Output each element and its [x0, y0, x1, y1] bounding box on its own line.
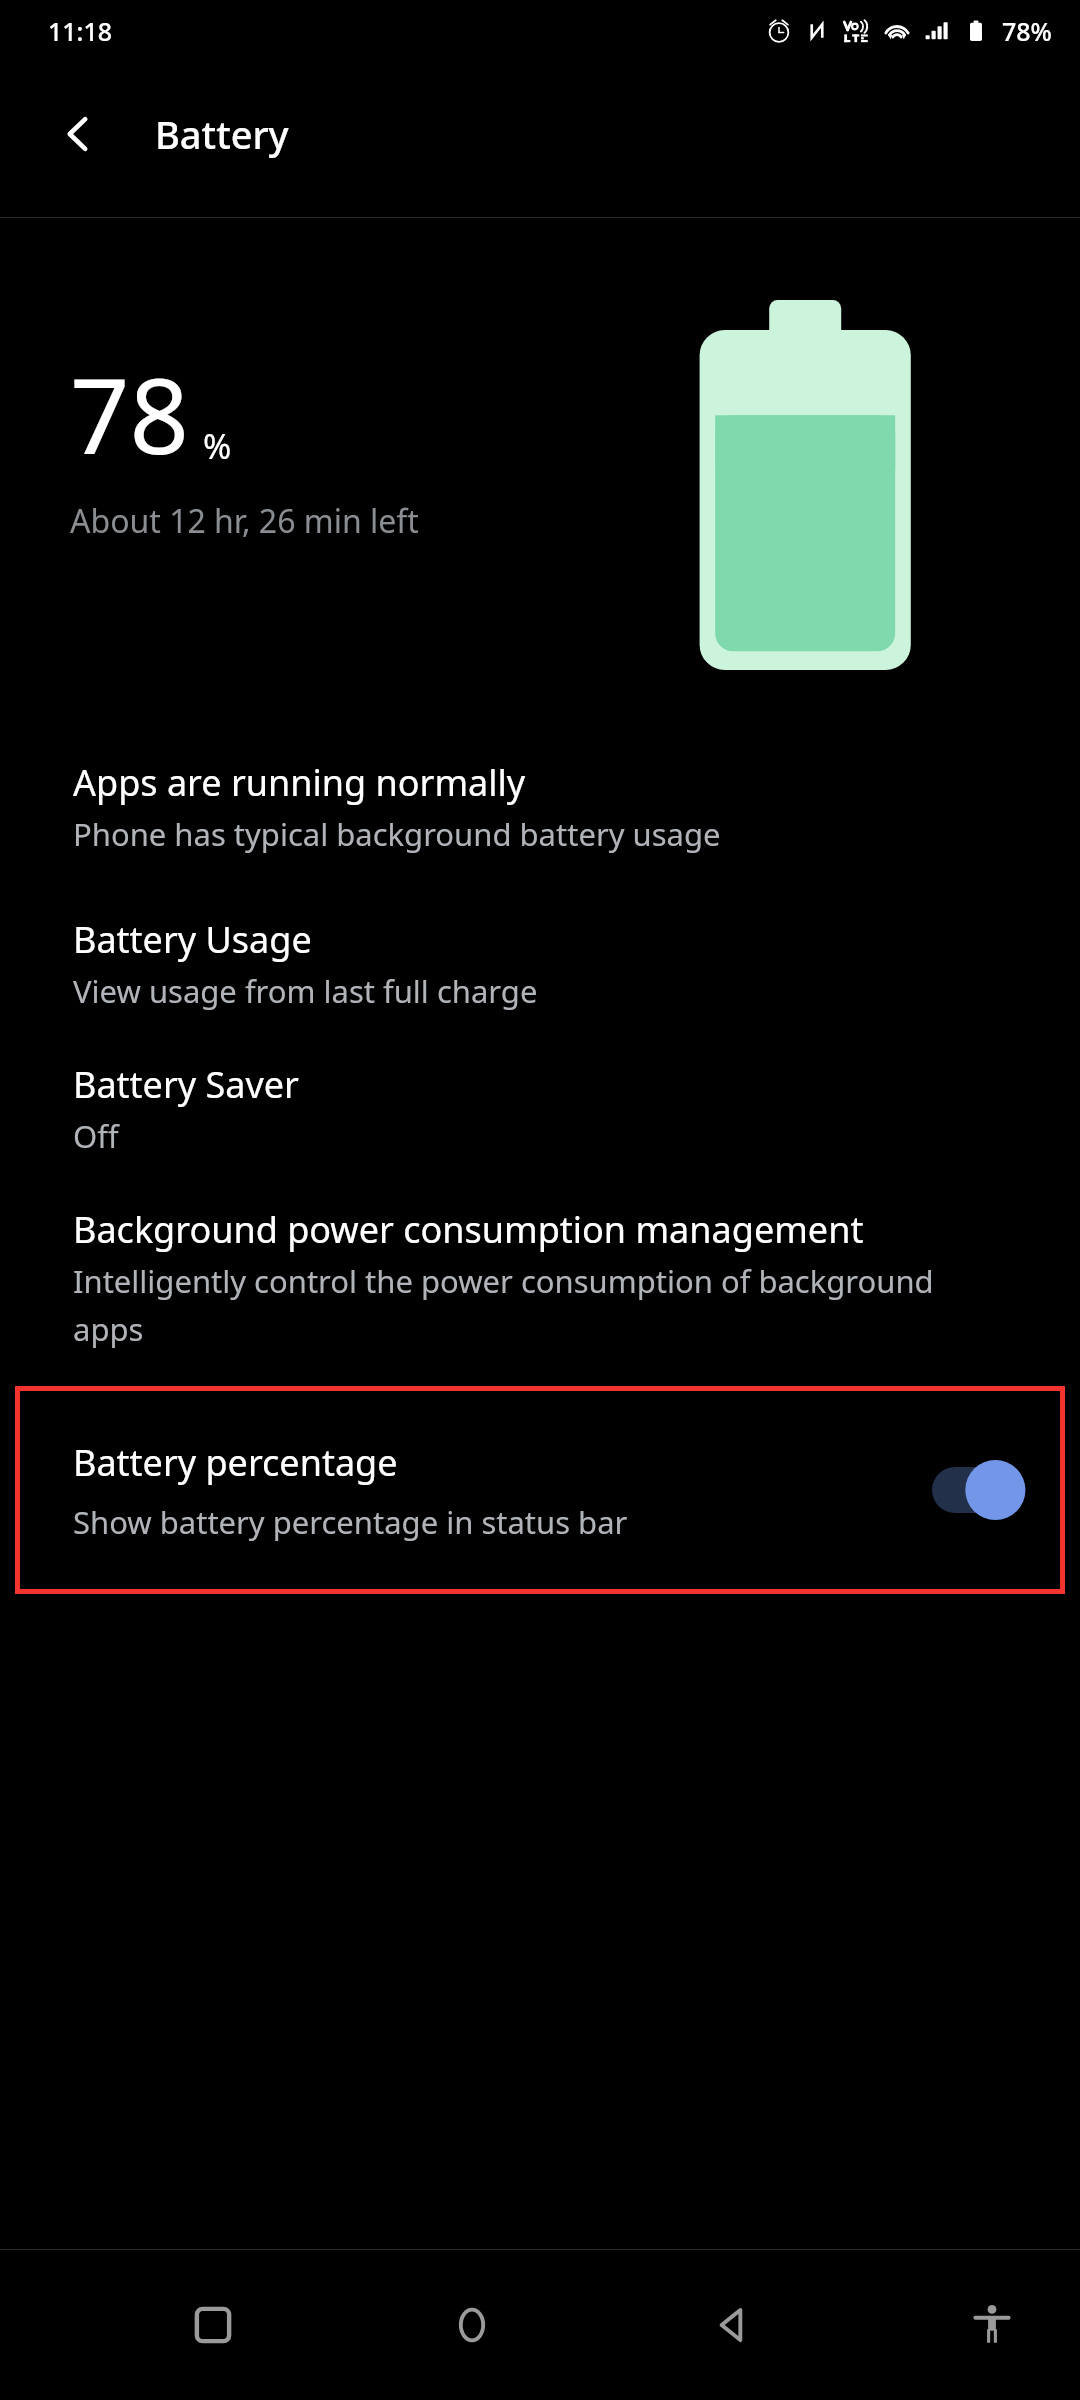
- staticText: Off: [73, 1115, 119, 1157]
- button[interactable]: Battery Saver: [0, 1060, 1080, 1157]
- button[interactable]: Recent apps: [165, 2277, 261, 2373]
- staticText: Battery Usage: [73, 915, 312, 964]
- staticText: View usage from last full charge: [73, 970, 538, 1012]
- button[interactable]: Apps are running normally: [0, 758, 1080, 855]
- staticText: Battery percentage: [73, 1438, 398, 1487]
- button[interactable]: Back: [684, 2277, 780, 2373]
- staticText: About 12 hr, 26 min left: [70, 499, 419, 543]
- staticText: Battery Saver: [73, 1060, 299, 1109]
- button[interactable]: Battery percentage toggle, on: [932, 1458, 1028, 1522]
- button[interactable]: Back: [48, 103, 110, 165]
- button[interactable]: Home: [424, 2277, 520, 2373]
- button[interactable]: Battery Usage: [0, 915, 1080, 1012]
- button[interactable]: Accessibility: [944, 2277, 1040, 2373]
- staticText: Intelligently control the power consumpt…: [73, 1260, 1000, 1350]
- staticText: 78%: [1002, 14, 1052, 48]
- staticText: Battery: [155, 108, 289, 160]
- staticText: 11:18: [48, 14, 113, 48]
- staticText: 78: [70, 343, 189, 485]
- button[interactable]: Background power consumption management: [0, 1205, 1080, 1350]
- staticText: Show battery percentage in status bar: [73, 1501, 628, 1543]
- staticText: Background power consumption management: [73, 1205, 864, 1254]
- staticText: %: [203, 423, 232, 469]
- staticText: Phone has typical background battery usa…: [73, 813, 721, 855]
- staticText: Apps are running normally: [73, 758, 526, 807]
- button[interactable]: Battery percentage: [15, 1386, 1065, 1594]
